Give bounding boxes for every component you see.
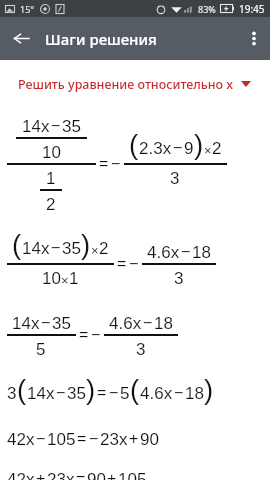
- staticText: 4.6x: [109, 314, 142, 333]
- staticText: ×: [61, 273, 69, 287]
- staticText: 9: [184, 139, 194, 158]
- staticText: ): [194, 129, 204, 160]
- staticText: =: [99, 155, 109, 173]
- staticText: =: [79, 326, 89, 344]
- staticText: −: [41, 314, 51, 332]
- staticText: −: [56, 384, 66, 402]
- staticText: ): [81, 229, 91, 260]
- staticText: 2: [99, 239, 109, 258]
- staticText: 4.6x: [140, 384, 173, 403]
- staticText: ): [204, 374, 214, 405]
- staticText: 3: [136, 340, 146, 359]
- staticText: (: [12, 229, 22, 260]
- staticText: Шаги решения: [45, 29, 157, 49]
- button[interactable]: Back: [0, 17, 42, 60]
- staticText: 23x: [47, 470, 75, 480]
- staticText: −: [174, 384, 184, 402]
- staticText: 14x: [22, 117, 50, 136]
- staticText: 5: [36, 340, 46, 359]
- staticText: 3: [174, 269, 184, 288]
- staticText: 35: [67, 384, 86, 403]
- staticText: +: [107, 470, 117, 480]
- staticText: −: [91, 326, 101, 344]
- staticText: 18: [185, 384, 204, 403]
- staticText: 14x: [22, 239, 50, 258]
- staticText: −: [109, 384, 119, 402]
- button[interactable]: Решить уравнение относительно x: [0, 60, 270, 108]
- staticText: 15°: [20, 3, 35, 15]
- staticText: ×: [204, 143, 212, 157]
- staticText: Решить уравнение относительно x: [18, 76, 234, 93]
- staticText: 105: [118, 470, 147, 480]
- staticText: 2: [212, 139, 222, 158]
- staticText: =: [76, 470, 86, 480]
- staticText: +: [129, 430, 139, 448]
- staticText: +: [36, 470, 46, 480]
- staticText: 3: [170, 169, 180, 188]
- staticText: 23x: [100, 430, 128, 449]
- staticText: 4.6x: [147, 243, 180, 262]
- staticText: 83%: [198, 3, 216, 15]
- staticText: −: [111, 155, 121, 173]
- staticText: −: [89, 430, 99, 448]
- staticText: 14x: [27, 384, 55, 403]
- staticText: 105: [47, 430, 76, 449]
- staticText: 2: [46, 195, 56, 214]
- staticText: =: [97, 384, 107, 402]
- button[interactable]: More options: [237, 17, 270, 60]
- staticText: 5: [120, 384, 130, 403]
- staticText: 14x: [12, 314, 40, 333]
- staticText: 1: [46, 169, 56, 188]
- staticText: (: [130, 374, 140, 405]
- staticText: −: [51, 117, 61, 135]
- staticText: 35: [62, 239, 81, 258]
- staticText: =: [77, 430, 87, 448]
- staticText: −: [36, 430, 46, 448]
- staticText: ×: [91, 243, 99, 257]
- staticText: 90: [140, 430, 159, 449]
- staticText: 35: [62, 117, 81, 136]
- staticText: −: [51, 239, 61, 257]
- staticText: 18: [154, 314, 173, 333]
- staticText: 2.3x: [139, 139, 172, 158]
- staticText: =: [117, 255, 127, 273]
- staticText: 10: [42, 143, 61, 162]
- staticText: 1: [69, 269, 79, 288]
- staticText: (: [17, 374, 27, 405]
- staticText: −: [181, 243, 191, 261]
- staticText: −: [143, 314, 153, 332]
- staticText: (: [129, 129, 139, 160]
- staticText: 19:45: [239, 2, 265, 16]
- staticText: 42x: [7, 470, 35, 480]
- staticText: −: [173, 139, 183, 157]
- staticText: ): [86, 374, 96, 405]
- staticText: 35: [52, 314, 71, 333]
- staticText: 42x: [7, 430, 35, 449]
- staticText: −: [129, 255, 139, 273]
- staticText: 10: [42, 269, 61, 288]
- staticText: 3: [7, 384, 17, 403]
- staticText: 18: [192, 243, 211, 262]
- staticText: 90: [87, 470, 106, 480]
